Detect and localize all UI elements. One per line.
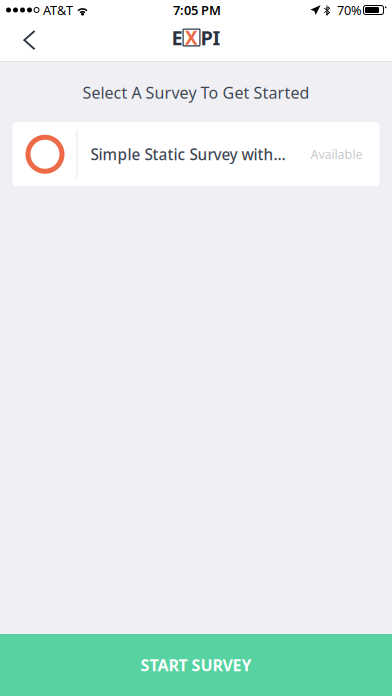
staticText: 70% [337,1,362,19]
button[interactable]: START SURVEY [0,634,392,696]
staticText: Select A Survey To Get Started [82,82,309,103]
staticText: Available [310,146,362,163]
staticText: E [171,24,182,51]
staticText: AT&T [43,1,73,19]
staticText: Simple Static Survey with... [90,144,285,165]
staticText: 7:05 PM [173,1,221,19]
staticText: X [185,25,198,50]
button[interactable]: Simple Static Survey with... [12,122,379,186]
staticText: START SURVEY [140,654,251,676]
button[interactable]: Back [0,20,52,61]
staticText: PI [200,24,220,51]
